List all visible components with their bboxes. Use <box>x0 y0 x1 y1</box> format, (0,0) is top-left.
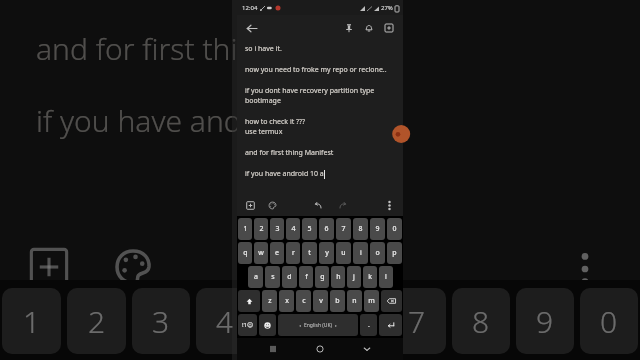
button[interactable]: y <box>319 242 334 264</box>
button[interactable]: Emoji <box>259 314 276 336</box>
staticText: 9 <box>375 224 380 234</box>
button[interactable]: 5 <box>302 218 317 240</box>
staticText: n <box>352 296 357 306</box>
staticText: 1 <box>23 301 41 342</box>
staticText: m <box>368 296 375 306</box>
button[interactable]: b <box>330 290 345 312</box>
staticText: h <box>336 272 341 282</box>
button[interactable]: 6 <box>319 218 334 240</box>
button[interactable]: 9 <box>370 218 385 240</box>
staticText: so i have it. <box>245 44 282 54</box>
staticText: 0 <box>392 224 397 234</box>
button[interactable]: Redo <box>334 197 350 213</box>
button[interactable]: h <box>331 266 345 288</box>
staticText: z <box>268 296 272 306</box>
staticText: 2 <box>88 301 106 342</box>
button[interactable]: x <box>279 290 294 312</box>
button[interactable]: d <box>282 266 297 288</box>
button[interactable]: v <box>313 290 328 312</box>
staticText: use termux <box>245 127 283 137</box>
button[interactable]: z <box>262 290 277 312</box>
button[interactable]: Recents <box>262 338 284 360</box>
button[interactable]: More options <box>381 197 397 213</box>
button[interactable]: Shift <box>238 290 260 312</box>
staticText: if you have android 10 a <box>245 169 324 179</box>
staticText: !1☺ <box>242 321 254 329</box>
button[interactable]: Drawing <box>264 197 280 213</box>
button[interactable]: r <box>286 242 300 264</box>
staticText: f <box>305 272 308 282</box>
staticText: d <box>287 272 292 282</box>
staticText: u <box>341 248 346 258</box>
staticText: o <box>375 248 380 258</box>
button[interactable]: !1☺ <box>238 314 257 336</box>
staticText: ◂ <box>299 323 302 328</box>
button[interactable]: Home <box>309 338 331 360</box>
button[interactable]: Insert <box>242 197 258 213</box>
button[interactable]: s <box>265 266 280 288</box>
button[interactable]: 7 <box>336 218 351 240</box>
staticText: and for first thing Manifest <box>245 148 334 158</box>
button[interactable]: 0 <box>387 218 402 240</box>
button[interactable]: k <box>363 266 377 288</box>
button[interactable]: e <box>270 242 284 264</box>
staticText: . <box>368 320 370 330</box>
staticText: bootimage <box>245 96 281 106</box>
staticText: e <box>275 248 279 258</box>
button[interactable]: p <box>387 242 402 264</box>
button[interactable]: t <box>302 242 317 264</box>
button[interactable]: Add <box>379 18 399 38</box>
button[interactable]: n <box>347 290 362 312</box>
staticText: 3 <box>275 224 280 234</box>
button[interactable]: Pin <box>339 18 359 38</box>
staticText: a <box>254 272 258 282</box>
button[interactable]: j <box>347 266 361 288</box>
staticText: s <box>271 272 275 282</box>
staticText: r <box>292 248 295 258</box>
staticText: 8 <box>358 224 363 234</box>
button[interactable]: Undo <box>310 197 326 213</box>
button[interactable]: 8 <box>353 218 368 240</box>
staticText: w <box>258 248 264 258</box>
button[interactable]: f <box>299 266 313 288</box>
staticText: g <box>320 272 325 282</box>
staticText: English (UK) <box>304 322 333 329</box>
button[interactable]: w <box>254 242 268 264</box>
staticText: q <box>243 248 248 258</box>
button[interactable]: q <box>238 242 252 264</box>
staticText: ▸ <box>335 323 338 328</box>
staticText: t <box>308 248 311 258</box>
button[interactable]: a <box>248 266 263 288</box>
button[interactable]: o <box>370 242 385 264</box>
staticText: k <box>368 272 372 282</box>
button[interactable]: Reminder <box>359 18 379 38</box>
staticText: 9 <box>536 301 554 342</box>
button[interactable]: m <box>364 290 379 312</box>
button[interactable]: c <box>296 290 311 312</box>
staticText: j <box>353 272 355 282</box>
staticText: 5 <box>280 301 298 342</box>
button[interactable]: u <box>336 242 351 264</box>
staticText: 12:04 <box>242 4 258 12</box>
button[interactable]: Hide keyboard <box>356 338 378 360</box>
staticText: i <box>360 248 362 258</box>
button[interactable]: ◂ <box>278 314 358 336</box>
staticText: 1 <box>243 224 248 234</box>
button[interactable]: . <box>360 314 377 336</box>
button[interactable]: 4 <box>286 218 300 240</box>
button[interactable]: l <box>379 266 393 288</box>
button[interactable]: i <box>353 242 368 264</box>
staticText: how to check it ??? <box>245 117 306 127</box>
staticText: 5 <box>307 224 312 234</box>
staticText: 0 <box>600 301 618 342</box>
button[interactable]: 1 <box>238 218 252 240</box>
staticText: 6 <box>344 301 362 342</box>
staticText: c <box>302 296 306 306</box>
button[interactable]: 2 <box>254 218 268 240</box>
button[interactable]: g <box>315 266 329 288</box>
staticText: x <box>285 296 289 306</box>
button[interactable]: Enter <box>379 314 402 336</box>
button[interactable]: Backspace <box>381 290 402 312</box>
button[interactable]: Back <box>241 18 261 38</box>
button[interactable]: 3 <box>270 218 284 240</box>
